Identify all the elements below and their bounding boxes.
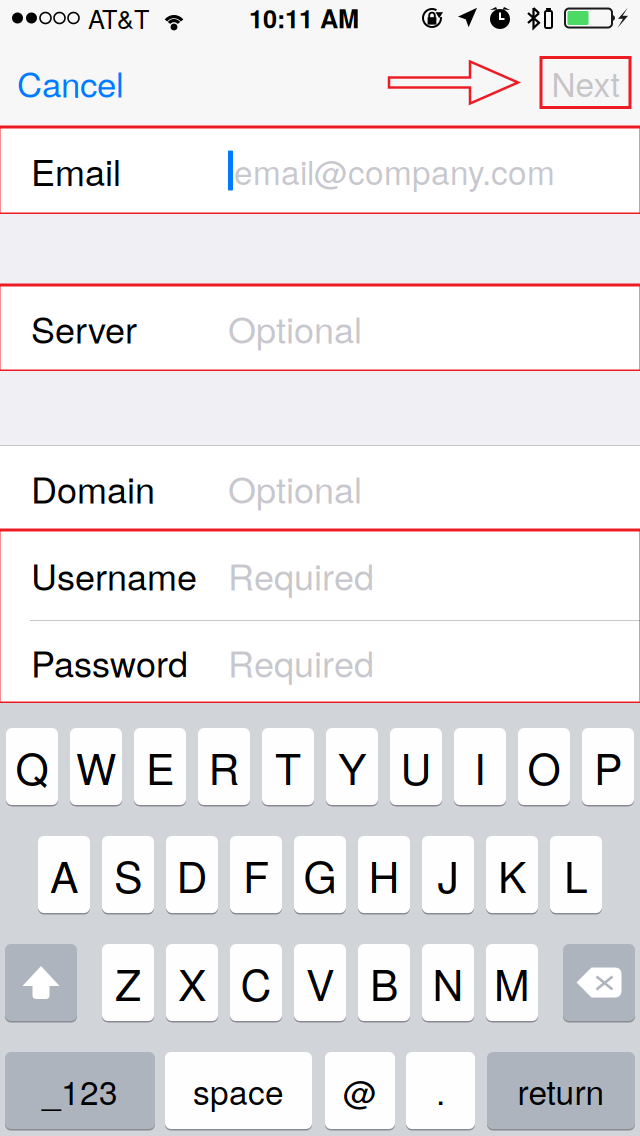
- button[interactable]: K: [486, 835, 538, 914]
- button[interactable]: Server: [0, 285, 640, 371]
- button[interactable]: Next: [541, 57, 630, 107]
- staticText: Y: [338, 736, 366, 797]
- staticText: Required: [228, 636, 374, 688]
- button[interactable]: V: [294, 943, 346, 1022]
- button[interactable]: Shift: [5, 943, 77, 1022]
- staticText: T: [275, 736, 301, 797]
- staticText: N: [432, 952, 463, 1013]
- button[interactable]: Delete: [563, 943, 635, 1022]
- button[interactable]: R: [198, 727, 250, 806]
- button[interactable]: T: [262, 727, 314, 806]
- button[interactable]: D: [166, 835, 218, 914]
- staticText: G: [303, 844, 336, 905]
- button[interactable]: C: [230, 943, 282, 1022]
- button[interactable]: Domain: [0, 446, 640, 530]
- staticText: R: [208, 736, 239, 797]
- button[interactable]: _123: [5, 1051, 155, 1130]
- staticText: Server: [31, 302, 137, 354]
- staticText: M: [494, 952, 530, 1013]
- button[interactable]: @: [325, 1051, 395, 1130]
- button[interactable]: Y: [326, 727, 378, 806]
- staticText: Optional: [228, 462, 362, 514]
- button[interactable]: G: [294, 835, 346, 914]
- button[interactable]: X: [166, 943, 218, 1022]
- staticText: L: [564, 844, 588, 905]
- staticText: .: [436, 1067, 445, 1114]
- staticText: J: [437, 844, 458, 905]
- staticText: H: [368, 844, 399, 905]
- staticText: O: [527, 736, 560, 797]
- staticText: Required: [228, 549, 374, 601]
- staticText: Z: [115, 952, 141, 1013]
- button[interactable]: S: [102, 835, 154, 914]
- button[interactable]: I: [454, 727, 506, 806]
- button[interactable]: F: [230, 835, 282, 914]
- staticText: D: [176, 844, 207, 905]
- button[interactable]: A: [38, 835, 90, 914]
- button[interactable]: M: [486, 943, 538, 1022]
- button[interactable]: Email: [0, 127, 640, 214]
- button[interactable]: Password: [0, 621, 640, 703]
- staticText: V: [306, 952, 334, 1013]
- button[interactable]: Username: [0, 530, 640, 620]
- staticText: A: [50, 844, 78, 905]
- button[interactable]: L: [550, 835, 602, 914]
- button[interactable]: B: [358, 943, 410, 1022]
- button[interactable]: Z: [102, 943, 154, 1022]
- staticText: B: [370, 952, 398, 1013]
- staticText: Domain: [31, 462, 155, 514]
- button[interactable]: O: [518, 727, 570, 806]
- staticText: E: [146, 736, 174, 797]
- staticText: F: [243, 844, 269, 905]
- staticText: Next: [551, 59, 619, 106]
- staticText: K: [498, 844, 526, 905]
- button[interactable]: J: [422, 835, 474, 914]
- staticText: U: [400, 736, 431, 797]
- button[interactable]: H: [358, 835, 410, 914]
- staticText: return: [517, 1067, 604, 1114]
- staticText: S: [114, 844, 142, 905]
- staticText: email@company.com: [234, 147, 555, 194]
- button[interactable]: N: [422, 943, 474, 1022]
- staticText: _123: [42, 1067, 118, 1114]
- staticText: AT&T: [88, 0, 149, 36]
- staticText: Email: [31, 145, 121, 196]
- staticText: W: [76, 736, 116, 797]
- staticText: Q: [15, 736, 48, 797]
- staticText: Username: [31, 549, 197, 601]
- staticText: I: [474, 736, 486, 797]
- button[interactable]: E: [134, 727, 186, 806]
- button[interactable]: Q: [6, 727, 58, 806]
- staticText: Cancel: [17, 58, 124, 107]
- staticText: C: [240, 952, 271, 1013]
- button[interactable]: space: [165, 1051, 312, 1130]
- button[interactable]: U: [390, 727, 442, 806]
- button[interactable]: return: [487, 1051, 635, 1130]
- button[interactable]: P: [582, 727, 634, 806]
- staticText: space: [193, 1067, 284, 1114]
- staticText: @: [343, 1067, 377, 1114]
- button[interactable]: Cancel: [0, 44, 142, 121]
- staticText: Optional: [228, 302, 362, 354]
- button[interactable]: .: [406, 1051, 475, 1130]
- staticText: 10:11 AM: [249, 0, 359, 36]
- button[interactable]: W: [70, 727, 122, 806]
- staticText: Password: [31, 636, 188, 688]
- staticText: X: [178, 952, 206, 1013]
- staticText: P: [594, 736, 622, 797]
